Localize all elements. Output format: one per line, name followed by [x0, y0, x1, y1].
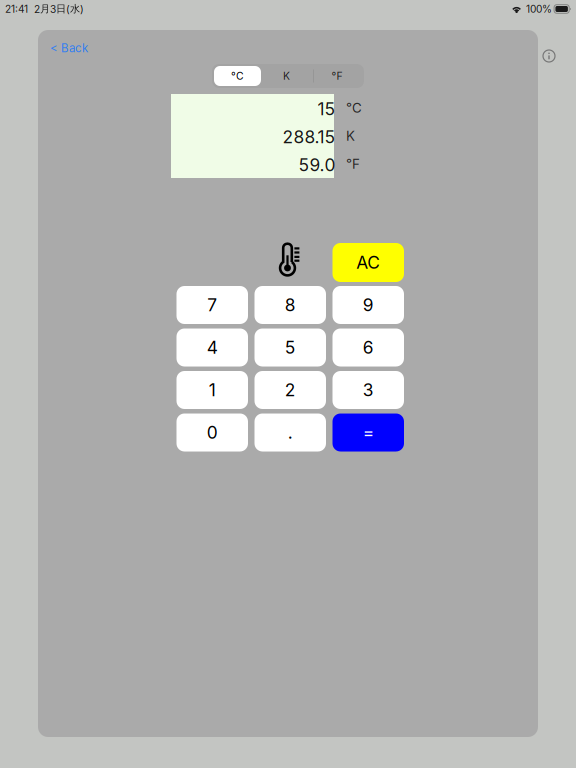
- button[interactable]: =: [332, 413, 404, 451]
- staticText: 288.15: [282, 126, 335, 147]
- button[interactable]: 9: [332, 286, 404, 324]
- button[interactable]: 2: [254, 371, 326, 409]
- staticText: °C: [346, 100, 362, 116]
- button[interactable]: 0: [176, 413, 248, 451]
- button[interactable]: 6: [332, 328, 404, 366]
- staticText: 3: [363, 379, 374, 400]
- button[interactable]: .: [254, 413, 326, 451]
- staticText: 2: [285, 379, 296, 400]
- staticText: 100%: [526, 3, 552, 15]
- button[interactable]: °F: [312, 66, 362, 86]
- staticText: 1: [209, 379, 216, 400]
- staticText: K: [283, 70, 290, 82]
- button[interactable]: 7: [176, 286, 248, 324]
- button[interactable]: < Back: [50, 38, 106, 58]
- staticText: 9: [363, 294, 374, 315]
- staticText: °C: [231, 70, 244, 82]
- staticText: °F: [331, 70, 342, 82]
- button[interactable]: 5: [254, 328, 326, 366]
- staticText: 0: [207, 422, 218, 443]
- staticText: .: [288, 422, 293, 443]
- staticText: 21:41: [5, 3, 28, 15]
- button[interactable]: 3: [332, 371, 404, 409]
- staticText: 6: [363, 337, 374, 358]
- staticText: =: [363, 422, 374, 443]
- button[interactable]: °C: [214, 66, 261, 86]
- staticText: 8: [285, 294, 296, 315]
- button[interactable]: 4: [176, 328, 248, 366]
- staticText: AC: [356, 252, 380, 273]
- staticText: 4: [207, 337, 218, 358]
- staticText: K: [346, 128, 355, 144]
- button[interactable]: 8: [254, 286, 326, 324]
- staticText: 15: [317, 98, 335, 119]
- staticText: 7: [207, 294, 217, 315]
- staticText: 2月3日(水): [34, 3, 84, 15]
- staticText: 59.0: [298, 154, 335, 175]
- button[interactable]: AC: [332, 243, 404, 282]
- staticText: < Back: [50, 41, 88, 55]
- staticText: °F: [346, 156, 360, 172]
- staticText: 5: [285, 337, 296, 358]
- button[interactable]: Info: [534, 41, 564, 71]
- button[interactable]: K: [261, 66, 312, 86]
- button[interactable]: 1: [176, 371, 248, 409]
